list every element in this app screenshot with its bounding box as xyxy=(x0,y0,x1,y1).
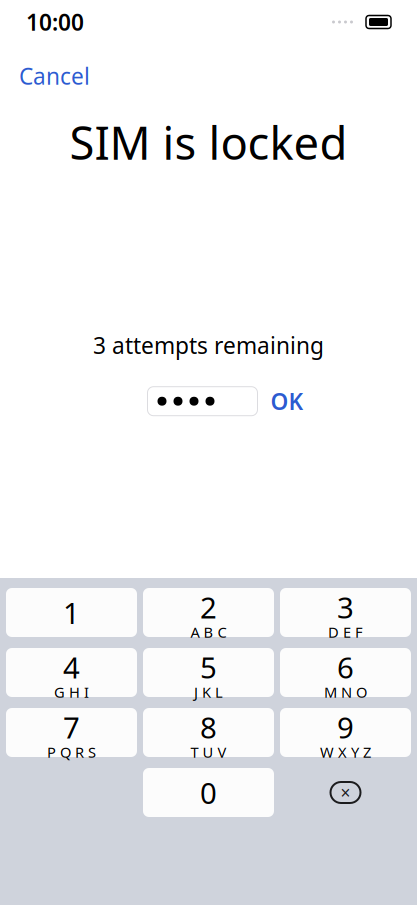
button[interactable]: Cancel xyxy=(16,56,93,96)
button[interactable]: Delete xyxy=(280,768,411,817)
staticText: 2 xyxy=(200,587,217,626)
button[interactable]: 7 xyxy=(6,708,137,757)
staticText: T U V xyxy=(190,742,226,762)
staticText: 1 xyxy=(63,593,80,632)
staticText: SIM is locked xyxy=(69,112,347,172)
staticText: M N O xyxy=(324,682,367,702)
button[interactable]: 5 xyxy=(143,648,274,697)
button[interactable]: 8 xyxy=(143,708,274,757)
staticText: 3 attempts remaining xyxy=(93,330,324,360)
staticText: 3 xyxy=(337,587,354,626)
button[interactable]: 6 xyxy=(280,648,411,697)
staticText: Cancel xyxy=(19,61,90,91)
button[interactable]: 2 xyxy=(143,588,274,637)
staticText: A B C xyxy=(190,622,226,642)
button[interactable]: 9 xyxy=(280,708,411,757)
staticText: W X Y Z xyxy=(320,742,371,762)
staticText: × xyxy=(340,781,350,804)
button[interactable]: OK xyxy=(270,382,303,420)
staticText: D E F xyxy=(328,622,363,642)
button[interactable]: 4 xyxy=(6,648,137,697)
staticText: 5 xyxy=(200,647,217,686)
staticText: 7 xyxy=(63,707,80,746)
button[interactable]: 1 xyxy=(6,588,137,637)
staticText: 9 xyxy=(337,707,354,746)
staticText: G H I xyxy=(54,682,89,702)
button[interactable]: 3 xyxy=(280,588,411,637)
staticText: 0 xyxy=(200,773,217,812)
staticText: 6 xyxy=(337,647,354,686)
staticText: 10:00 xyxy=(26,7,84,37)
button[interactable]: 0 xyxy=(143,768,274,817)
staticText: J K L xyxy=(194,682,223,702)
staticText: 8 xyxy=(200,707,217,746)
staticText: 4 xyxy=(63,647,80,686)
staticText: OK xyxy=(270,386,303,416)
staticText: P Q R S xyxy=(47,742,96,762)
